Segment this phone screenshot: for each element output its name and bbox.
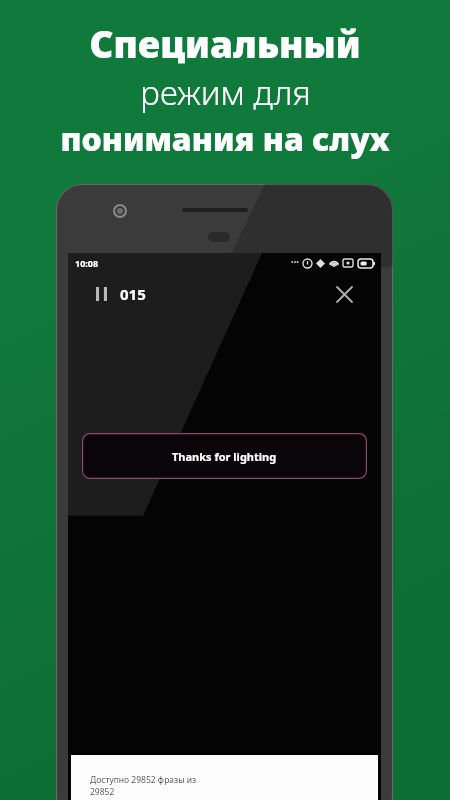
staticText: Специальный — [89, 18, 361, 68]
staticText: режим для — [140, 70, 311, 115]
button[interactable]: Доступно 29852 фразы из 29852 — [71, 755, 378, 800]
staticText: понимания на слух — [60, 117, 390, 161]
staticText: Доступно 29852 фразы из 29852 — [90, 774, 197, 798]
staticText: ••• — [291, 258, 299, 268]
button[interactable]: Thanks for lighting — [82, 433, 367, 479]
staticText: Thanks for lighting — [172, 449, 277, 464]
button[interactable]: 015 — [92, 280, 150, 308]
staticText: 015 — [120, 284, 146, 304]
staticText: 10:08 — [75, 257, 99, 269]
button[interactable]: Close — [327, 277, 361, 311]
